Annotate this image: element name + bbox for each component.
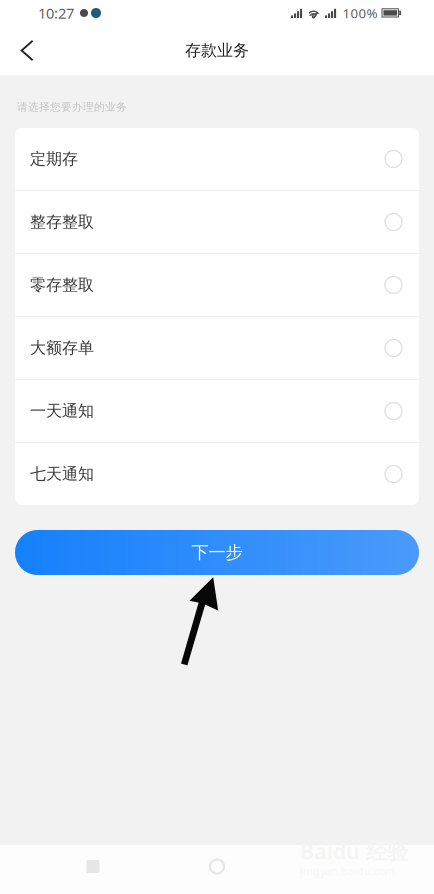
staticText: 一天通知 bbox=[30, 401, 94, 421]
button[interactable]: 下一步 bbox=[15, 530, 419, 575]
staticText: 整存整取 bbox=[30, 212, 94, 232]
staticText: 零存整取 bbox=[30, 275, 94, 295]
button[interactable]: Back bbox=[0, 26, 48, 75]
button[interactable]: 大额存单 bbox=[15, 317, 419, 379]
staticText: 存款业务 bbox=[185, 41, 249, 60]
button[interactable]: 零存整取 bbox=[15, 254, 419, 316]
button[interactable]: 整存整取 bbox=[15, 191, 419, 253]
staticText: 100% bbox=[342, 4, 377, 22]
button[interactable]: 一天通知 bbox=[15, 380, 419, 442]
staticText: 下一步 bbox=[191, 542, 242, 563]
button[interactable]: Recents bbox=[31, 845, 155, 894]
staticText: 10:27 bbox=[38, 3, 74, 23]
button[interactable]: 七天通知 bbox=[15, 443, 419, 505]
staticText: 七天通知 bbox=[30, 464, 94, 484]
staticText: 大额存单 bbox=[30, 338, 94, 358]
button[interactable]: 定期存 bbox=[15, 128, 419, 190]
staticText: Baidu 经验 bbox=[300, 837, 408, 865]
staticText: 请选择您要办理的业务 bbox=[17, 100, 127, 113]
staticText: 定期存 bbox=[30, 149, 78, 169]
